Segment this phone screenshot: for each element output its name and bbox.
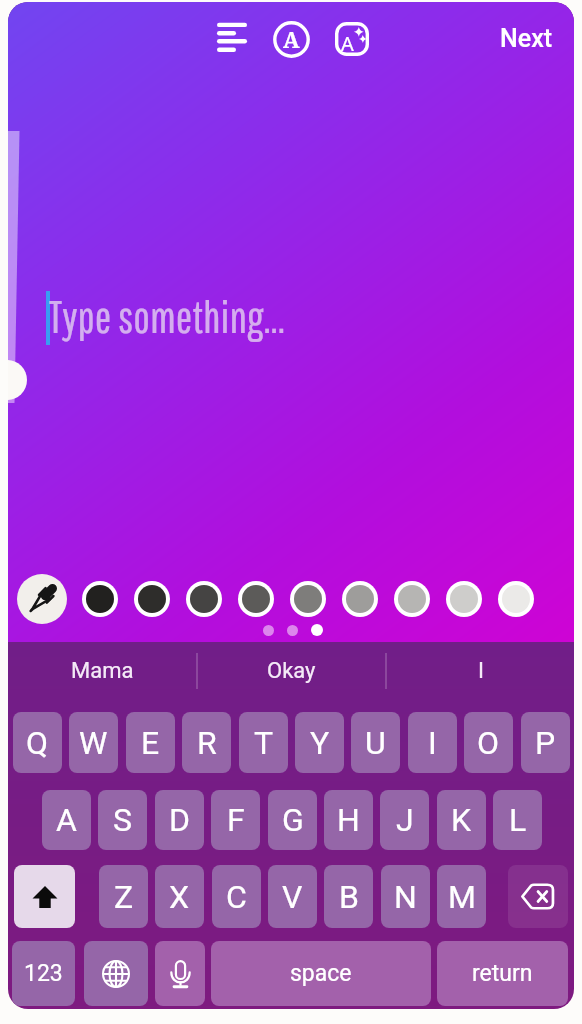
button[interactable]: Q [13, 712, 62, 773]
button[interactable] [294, 585, 322, 613]
button[interactable]: M [437, 865, 486, 928]
staticText: N [394, 878, 417, 916]
staticText: F [227, 801, 245, 839]
button[interactable]: S [98, 790, 147, 850]
staticText: Okay [267, 658, 316, 684]
staticText: C [226, 878, 247, 916]
staticText: T [254, 724, 274, 762]
button[interactable]: H [324, 790, 373, 850]
button[interactable]: Font style [265, 13, 317, 65]
staticText: O [477, 724, 500, 762]
staticText: I [428, 724, 437, 762]
button[interactable]: Text effects [326, 13, 378, 65]
button[interactable]: N [381, 865, 430, 928]
staticText: H [337, 801, 360, 839]
button[interactable] [450, 585, 478, 613]
button[interactable]: Shift [14, 865, 75, 928]
button[interactable]: Backspace [508, 865, 568, 928]
button[interactable]: V [268, 865, 317, 928]
button[interactable]: K [437, 790, 486, 850]
button[interactable]: Mama [8, 642, 196, 700]
staticText: Q [26, 724, 49, 762]
staticText: B [339, 878, 359, 916]
button[interactable]: L [493, 790, 542, 850]
staticText: Mama [71, 658, 134, 684]
button[interactable]: 123 [12, 941, 75, 1006]
button[interactable] [502, 585, 530, 613]
button[interactable]: B [324, 865, 373, 928]
button[interactable] [86, 585, 114, 613]
staticText: I [478, 658, 484, 684]
button[interactable]: P [521, 712, 570, 773]
button[interactable]: space [211, 941, 431, 1006]
staticText: Next [500, 24, 553, 53]
button[interactable]: I [387, 642, 574, 700]
button[interactable]: Z [99, 865, 148, 928]
button[interactable]: D [155, 790, 204, 850]
button[interactable] [190, 585, 218, 613]
button[interactable]: J [380, 790, 429, 850]
staticText: P [535, 724, 556, 762]
staticText: R [197, 724, 217, 762]
button[interactable] [398, 585, 426, 613]
staticText: L [509, 801, 527, 839]
button[interactable]: Okay [198, 642, 385, 700]
button[interactable] [138, 585, 166, 613]
button[interactable] [242, 585, 270, 613]
staticText: S [113, 801, 132, 839]
button[interactable]: E [126, 712, 175, 773]
button[interactable]: I [408, 712, 457, 773]
button[interactable]: C [212, 865, 261, 928]
button[interactable]: F [211, 790, 260, 850]
staticText: Z [114, 878, 134, 916]
staticText: K [451, 801, 472, 839]
staticText: W [79, 724, 108, 762]
staticText: Type something... [49, 291, 285, 342]
button[interactable]: U [351, 712, 400, 773]
staticText: J [396, 801, 414, 839]
staticText: V [282, 878, 303, 916]
staticText: return [472, 960, 533, 987]
staticText: U [365, 724, 386, 762]
button[interactable]: O [464, 712, 513, 773]
staticText: 123 [24, 960, 63, 987]
button[interactable]: Switch language [84, 941, 148, 1006]
staticText: X [169, 878, 190, 916]
button[interactable]: G [268, 790, 317, 850]
button[interactable]: A [42, 790, 91, 850]
staticText: A [56, 801, 77, 839]
staticText: space [290, 960, 352, 987]
button[interactable]: return [437, 941, 568, 1006]
staticText: E [141, 724, 160, 762]
button[interactable]: Eyedropper color picker [17, 574, 67, 624]
button[interactable] [346, 585, 374, 613]
staticText: Y [310, 724, 330, 762]
button[interactable]: Y [295, 712, 344, 773]
staticText: D [169, 801, 190, 839]
button[interactable]: T [239, 712, 288, 773]
button[interactable]: Text alignment [206, 11, 258, 63]
staticText: M [448, 878, 476, 916]
button[interactable]: Text size [8, 131, 38, 403]
button[interactable]: Next [490, 13, 563, 64]
staticText: G [282, 801, 304, 839]
staticText: A [283, 24, 300, 54]
staticText: A [341, 30, 354, 57]
button[interactable]: Voice input [155, 941, 205, 1006]
button[interactable]: X [155, 865, 204, 928]
button[interactable]: W [69, 712, 118, 773]
button[interactable]: R [182, 712, 231, 773]
